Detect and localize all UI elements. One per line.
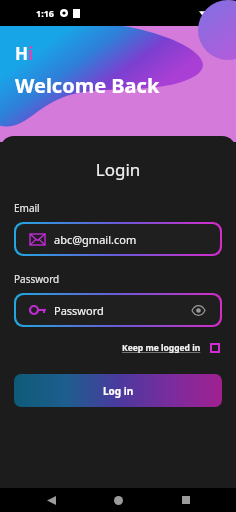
button[interactable]: Back [34, 488, 68, 512]
staticText: Welcome Back [15, 72, 160, 99]
staticText: Keep me logged in [122, 342, 201, 354]
button[interactable]: Home [101, 488, 135, 512]
staticText: Email [14, 201, 40, 215]
button[interactable]: Log in [14, 374, 222, 407]
button[interactable]: Keep me logged in [120, 340, 222, 356]
staticText: Login [14, 158, 222, 181]
staticText: Password [54, 303, 104, 318]
staticText: Password [14, 272, 60, 286]
staticText: 1:16 [36, 7, 54, 19]
staticText: Log in [103, 384, 134, 398]
button[interactable]: Recent apps [169, 488, 203, 512]
staticText: abc@gmail.com [54, 232, 137, 247]
button[interactable]: Show password [188, 300, 208, 320]
button[interactable]: Password [16, 295, 220, 325]
button[interactable]: abc@gmail.com [16, 224, 220, 254]
staticText: Hi [15, 42, 34, 65]
